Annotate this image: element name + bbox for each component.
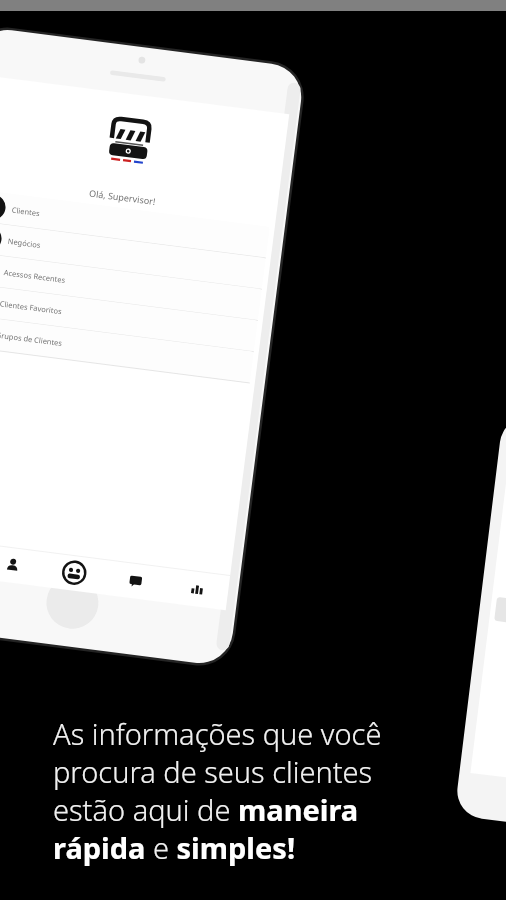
button[interactable]: Acessos Recentes [6, 267, 272, 298]
button[interactable]: Mensagens [143, 578, 189, 612]
button[interactable]: Grupos de Clientes [6, 329, 272, 360]
button[interactable]: Início [0, 564, 34, 598]
button[interactable]: Clientes [6, 205, 272, 236]
button[interactable]: Perfil [38, 569, 84, 603]
button[interactable]: Clientes Favoritos [6, 298, 272, 329]
button[interactable]: Grupos [90, 573, 136, 607]
button[interactable]: Relatórios [197, 583, 243, 617]
button[interactable]: Negócios [6, 236, 272, 267]
